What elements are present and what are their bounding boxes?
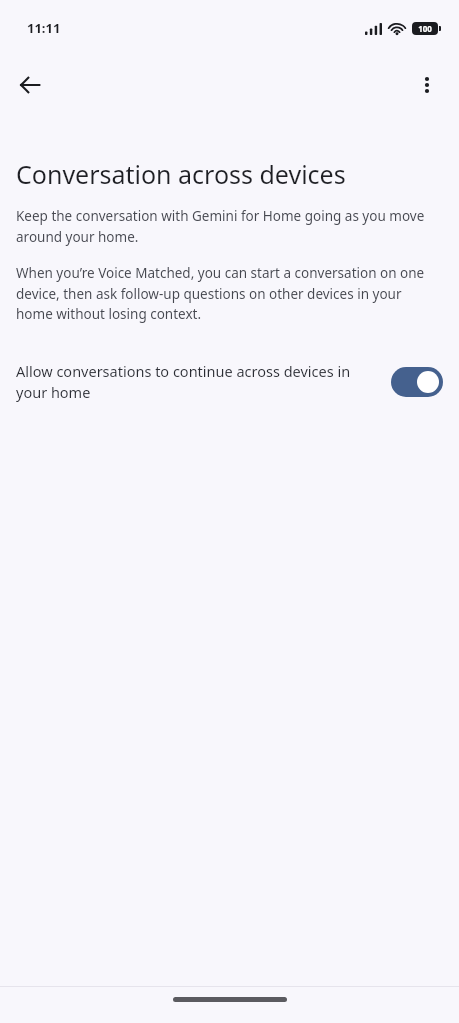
staticText: When you’re Voice Matched, you can start…	[16, 264, 441, 323]
button[interactable]: Back	[8, 63, 52, 107]
staticText: Allow conversations to continue across d…	[16, 361, 371, 403]
staticText: 100	[418, 23, 432, 34]
staticText: 11:11	[27, 19, 61, 37]
staticText: Keep the conversation with Gemini for Ho…	[16, 207, 441, 246]
button[interactable]: Allow conversations to continue across d…	[391, 367, 443, 397]
button[interactable]: Allow conversations to continue across d…	[0, 355, 459, 409]
staticText: Conversation across devices	[16, 157, 346, 191]
button[interactable]: More options	[406, 64, 448, 106]
